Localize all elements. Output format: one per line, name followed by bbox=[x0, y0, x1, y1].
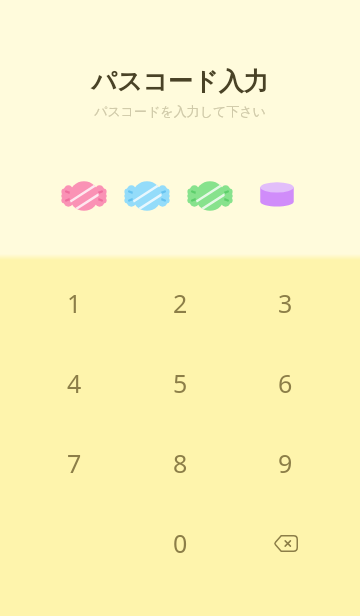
staticText: パスコード入力 bbox=[0, 66, 360, 97]
button[interactable]: 3 bbox=[235, 265, 335, 341]
staticText: パスコードを入力して下さい bbox=[0, 103, 360, 119]
staticText: 8 bbox=[173, 446, 188, 480]
staticText: 5 bbox=[173, 366, 188, 400]
staticText: 7 bbox=[67, 446, 82, 480]
button[interactable]: 8 bbox=[130, 425, 230, 501]
button[interactable]: Delete bbox=[236, 505, 336, 581]
staticText: 0 bbox=[173, 526, 188, 560]
button[interactable]: 0 bbox=[130, 505, 230, 581]
button[interactable]: 6 bbox=[235, 345, 335, 421]
staticText: 6 bbox=[278, 366, 293, 400]
button[interactable]: 2 bbox=[130, 265, 230, 341]
button[interactable]: 9 bbox=[235, 425, 335, 501]
button[interactable]: 7 bbox=[24, 425, 124, 501]
staticText: 9 bbox=[278, 446, 293, 480]
button[interactable]: 5 bbox=[130, 345, 230, 421]
button[interactable]: 4 bbox=[24, 345, 124, 421]
staticText: 3 bbox=[278, 286, 293, 320]
button[interactable]: 1 bbox=[24, 265, 124, 341]
staticText: 2 bbox=[173, 286, 188, 320]
staticText: 1 bbox=[67, 286, 82, 320]
staticText: 4 bbox=[67, 366, 82, 400]
